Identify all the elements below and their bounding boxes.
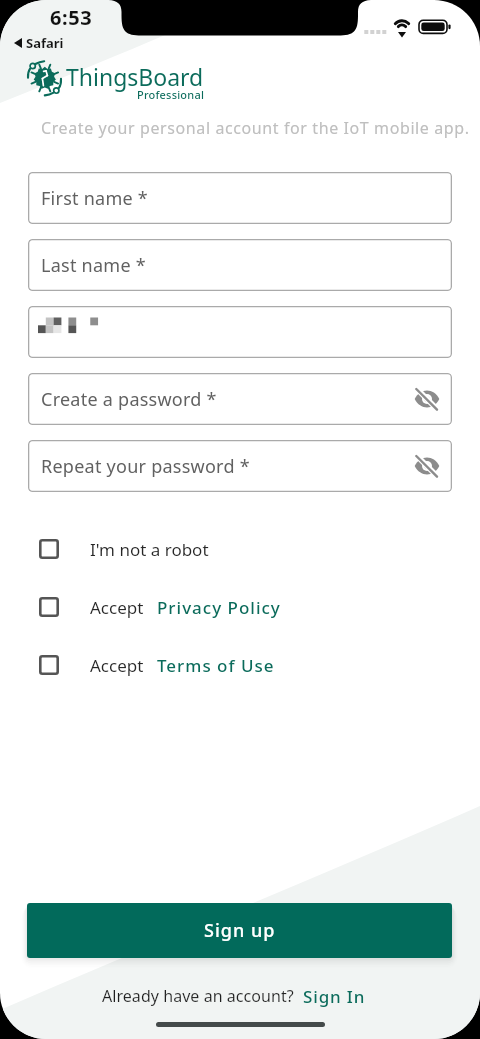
staticText: Privacy Policy (157, 596, 281, 619)
button[interactable]: I'm not a robot (28, 532, 408, 566)
staticText: Sign up (204, 918, 276, 943)
button[interactable]: Sign up (27, 903, 452, 958)
staticText: Professional (137, 87, 205, 102)
button[interactable]: Accept (28, 590, 408, 624)
button[interactable]: Last name * (28, 239, 452, 291)
staticText: Already have an account? (102, 985, 294, 1007)
staticText: 6:53 (50, 4, 93, 31)
button[interactable]: Accept (28, 648, 408, 682)
button[interactable]: Sign In (303, 985, 366, 1008)
staticText: Sign In (303, 985, 366, 1008)
staticText: Create a password * (41, 387, 217, 412)
staticText: Terms of Use (157, 654, 275, 677)
button[interactable]: Create a password * (28, 373, 452, 425)
button[interactable]: First name * (28, 172, 452, 224)
button[interactable]: Show password (410, 449, 444, 483)
staticText: ThingsBoard (66, 61, 204, 92)
staticText: Accept (90, 654, 144, 677)
staticText: Safari (26, 34, 64, 52)
button[interactable]: Show password (410, 382, 444, 416)
button[interactable]: Terms of Use (157, 654, 275, 677)
staticText: Last name * (41, 253, 146, 278)
staticText: Repeat your password * (41, 454, 250, 479)
staticText: First name * (41, 186, 149, 211)
button[interactable]: Repeat your password * (28, 440, 452, 492)
staticText: Accept (90, 596, 144, 619)
button[interactable] (28, 306, 452, 358)
staticText: I'm not a robot (90, 538, 209, 561)
staticText: Create your personal account for the IoT… (41, 117, 470, 139)
button[interactable]: Privacy Policy (157, 596, 281, 619)
